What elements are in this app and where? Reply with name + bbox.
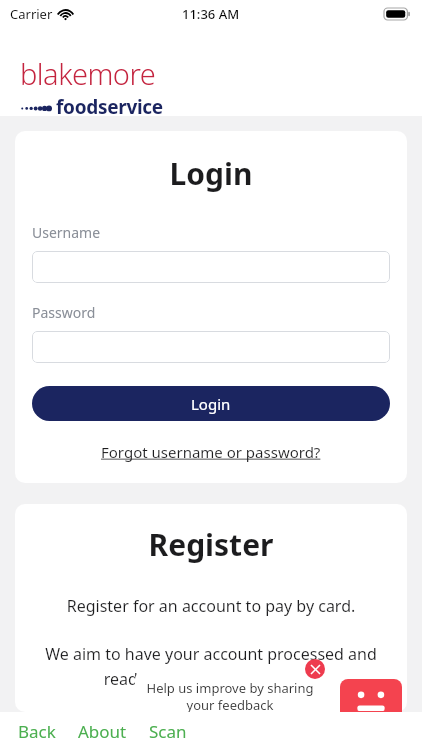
button[interactable]: Forgot username or password? — [32, 442, 390, 462]
button[interactable]: Close feedback — [305, 659, 325, 679]
staticText: Register — [35, 524, 387, 565]
button[interactable] — [32, 331, 390, 363]
staticText: blakemore — [20, 54, 156, 93]
staticText: Forgot username or password? — [101, 442, 321, 462]
staticText: Password — [32, 303, 96, 322]
staticText: Carrier — [10, 5, 53, 23]
staticText: Register for an account to pay by card. — [35, 595, 387, 617]
staticText: Login — [32, 153, 390, 194]
button[interactable] — [32, 251, 390, 283]
staticText: Scan — [149, 720, 187, 743]
button[interactable]: Send feedback — [340, 679, 402, 723]
staticText: Username — [32, 223, 101, 242]
staticText: foodservice — [56, 94, 163, 120]
button[interactable]: About — [72, 716, 133, 747]
staticText: Back — [18, 720, 56, 743]
staticText: About — [78, 720, 127, 743]
button[interactable]: Login — [32, 386, 390, 421]
staticText: We aim to have your account processed an… — [35, 643, 387, 689]
staticText: Help us improve by sharing your feedback — [143, 679, 317, 713]
button[interactable]: Help us improve by sharing your feedback — [135, 673, 325, 713]
button[interactable]: Scan — [143, 716, 193, 747]
staticText: 11:36 AM — [182, 5, 240, 23]
staticText: Login — [191, 394, 231, 414]
button[interactable]: Back — [12, 716, 62, 747]
